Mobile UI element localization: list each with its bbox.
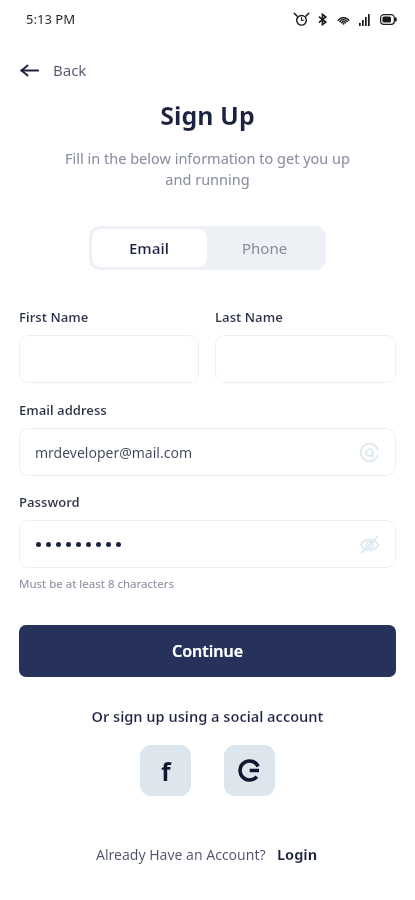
button[interactable] <box>215 335 396 383</box>
button[interactable]: Show password <box>19 520 396 568</box>
staticText: mrdeveloper@mail.com <box>35 443 192 462</box>
button[interactable]: Login <box>275 840 320 868</box>
staticText: Email address <box>19 401 107 419</box>
staticText: Fill in the below information to get you… <box>36 148 379 190</box>
staticText: Continue <box>172 640 244 662</box>
staticText: Or sign up using a social account <box>0 706 415 726</box>
staticText: Password <box>19 493 80 511</box>
staticText: Back <box>53 60 87 80</box>
staticText: Email <box>129 238 170 258</box>
staticText: First Name <box>19 308 89 326</box>
button[interactable]: mrdeveloper@mail.com <box>19 428 396 476</box>
button[interactable]: Phone <box>207 229 323 267</box>
staticText: f <box>161 754 171 788</box>
staticText: Phone <box>242 238 288 258</box>
staticText: Last Name <box>215 308 283 326</box>
button[interactable]: Continue <box>19 625 396 677</box>
button[interactable]: Sign up with Facebook <box>140 745 191 796</box>
staticText: Already Have an Account? <box>96 845 266 864</box>
button[interactable] <box>19 335 199 383</box>
other: Show password <box>359 534 380 555</box>
other: Back <box>20 61 39 80</box>
staticText: 5:13 PM <box>26 10 76 28</box>
staticText: Sign Up <box>0 98 415 132</box>
button[interactable]: Back <box>12 54 95 86</box>
other: Email <box>359 442 380 463</box>
staticText: Login <box>277 844 318 864</box>
button[interactable]: Sign up with Google <box>224 745 275 796</box>
staticText: Must be at least 8 characters <box>19 576 174 592</box>
button[interactable]: Email <box>92 229 207 267</box>
